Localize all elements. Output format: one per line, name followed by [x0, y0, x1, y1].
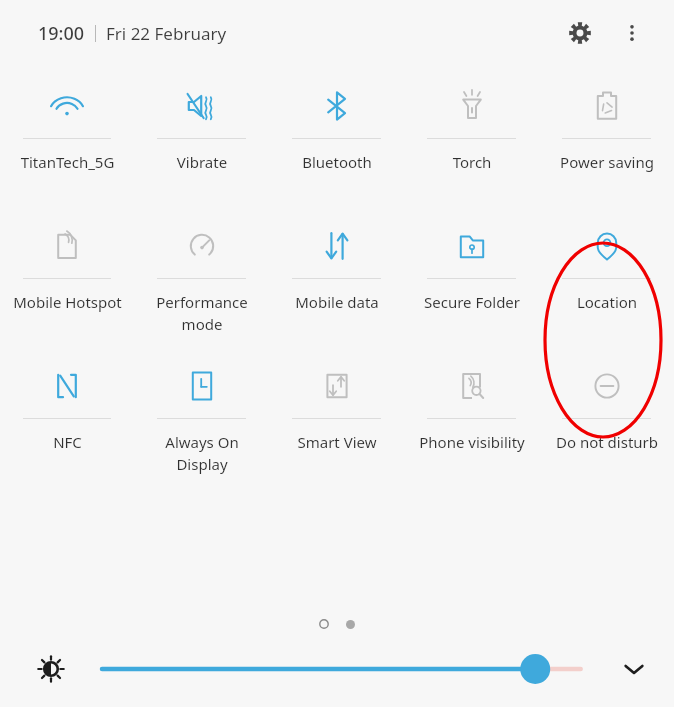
button[interactable]: Bluetooth	[269, 74, 404, 214]
staticText: 19:00	[38, 21, 85, 46]
button[interactable]: Always On Display	[134, 354, 269, 494]
button[interactable]: Vibrate	[134, 74, 269, 214]
staticText: Do not disturb	[545, 432, 669, 452]
other: Brightness	[38, 656, 64, 682]
staticText: Fri 22 February	[106, 22, 227, 45]
button[interactable]: More options	[610, 11, 654, 55]
button[interactable]: Settings	[558, 11, 602, 55]
button[interactable]: Location	[539, 214, 674, 354]
button[interactable]: Smart View	[269, 354, 404, 494]
staticText: Performance mode	[140, 292, 264, 335]
button[interactable]: TitanTech_5G	[0, 74, 134, 214]
button[interactable]: Performance mode	[134, 214, 269, 354]
staticText: Phone visibility	[410, 432, 534, 452]
staticText: Power saving	[545, 152, 669, 172]
staticText: Always On Display	[140, 432, 264, 475]
staticText: Secure Folder	[410, 292, 534, 312]
button[interactable]: Power saving	[539, 74, 674, 214]
staticText: Smart View	[275, 432, 399, 452]
button[interactable]: Mobile data	[269, 214, 404, 354]
button[interactable]: Mobile Hotspot	[0, 214, 134, 354]
button[interactable]: Expand brightness settings	[614, 649, 654, 689]
staticText: Vibrate	[140, 152, 264, 172]
staticText: Torch	[410, 152, 534, 172]
staticText: Mobile data	[275, 292, 399, 312]
button[interactable]: NFC	[0, 354, 134, 494]
staticText: Bluetooth	[275, 152, 399, 172]
staticText: Mobile Hotspot	[6, 292, 129, 312]
button[interactable]: Brightness slider	[102, 654, 588, 684]
staticText: Location	[545, 292, 669, 312]
staticText: TitanTech_5G	[6, 152, 129, 172]
button[interactable]: Torch	[404, 74, 539, 214]
button[interactable]: Phone visibility	[404, 354, 539, 494]
button[interactable]: Do not disturb	[539, 354, 674, 494]
staticText: NFC	[6, 432, 129, 452]
button[interactable]: Secure Folder	[404, 214, 539, 354]
